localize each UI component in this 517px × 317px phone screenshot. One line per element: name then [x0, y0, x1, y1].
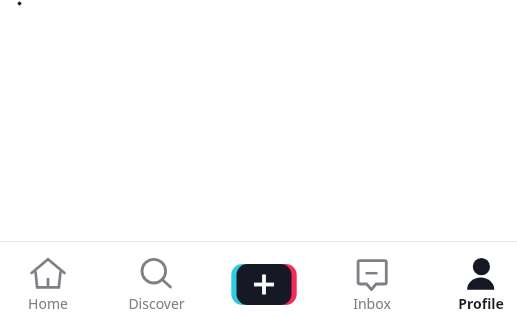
button[interactable]: Discover — [102, 248, 210, 314]
button[interactable]: Inbox — [318, 248, 426, 314]
staticText: Discover — [128, 294, 185, 313]
button[interactable]: Home — [0, 248, 102, 314]
button[interactable]: Create new video — [228, 260, 300, 308]
staticText: Home — [28, 294, 68, 313]
staticText: Profile — [458, 294, 504, 313]
button[interactable]: Profile — [427, 248, 517, 314]
staticText: Inbox — [353, 294, 391, 313]
